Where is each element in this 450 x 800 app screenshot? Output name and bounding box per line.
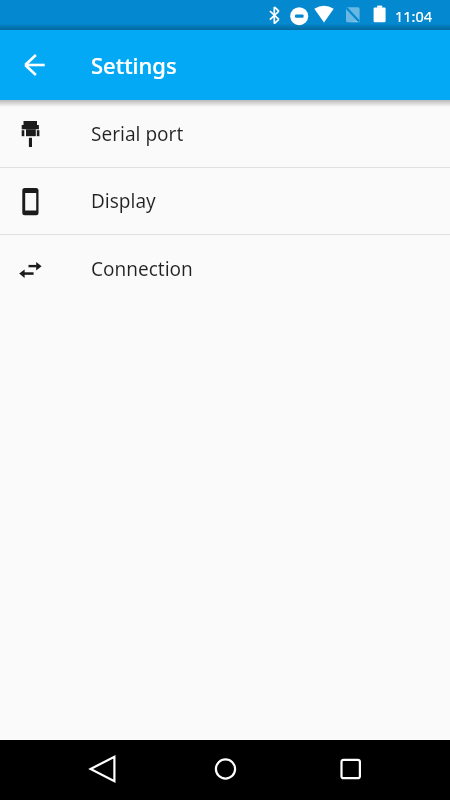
button[interactable]: Connection [0, 235, 450, 302]
staticText: Serial port [91, 121, 184, 147]
staticText: Settings [91, 50, 177, 80]
staticText: 11:04 [395, 6, 433, 26]
staticText: Display [91, 188, 156, 214]
button[interactable]: Display [0, 168, 450, 234]
button[interactable] [150, 740, 300, 800]
button[interactable] [12, 41, 60, 89]
button[interactable] [0, 740, 150, 800]
staticText: Connection [91, 256, 193, 282]
button[interactable] [300, 740, 450, 800]
button[interactable]: Serial port [0, 100, 450, 167]
